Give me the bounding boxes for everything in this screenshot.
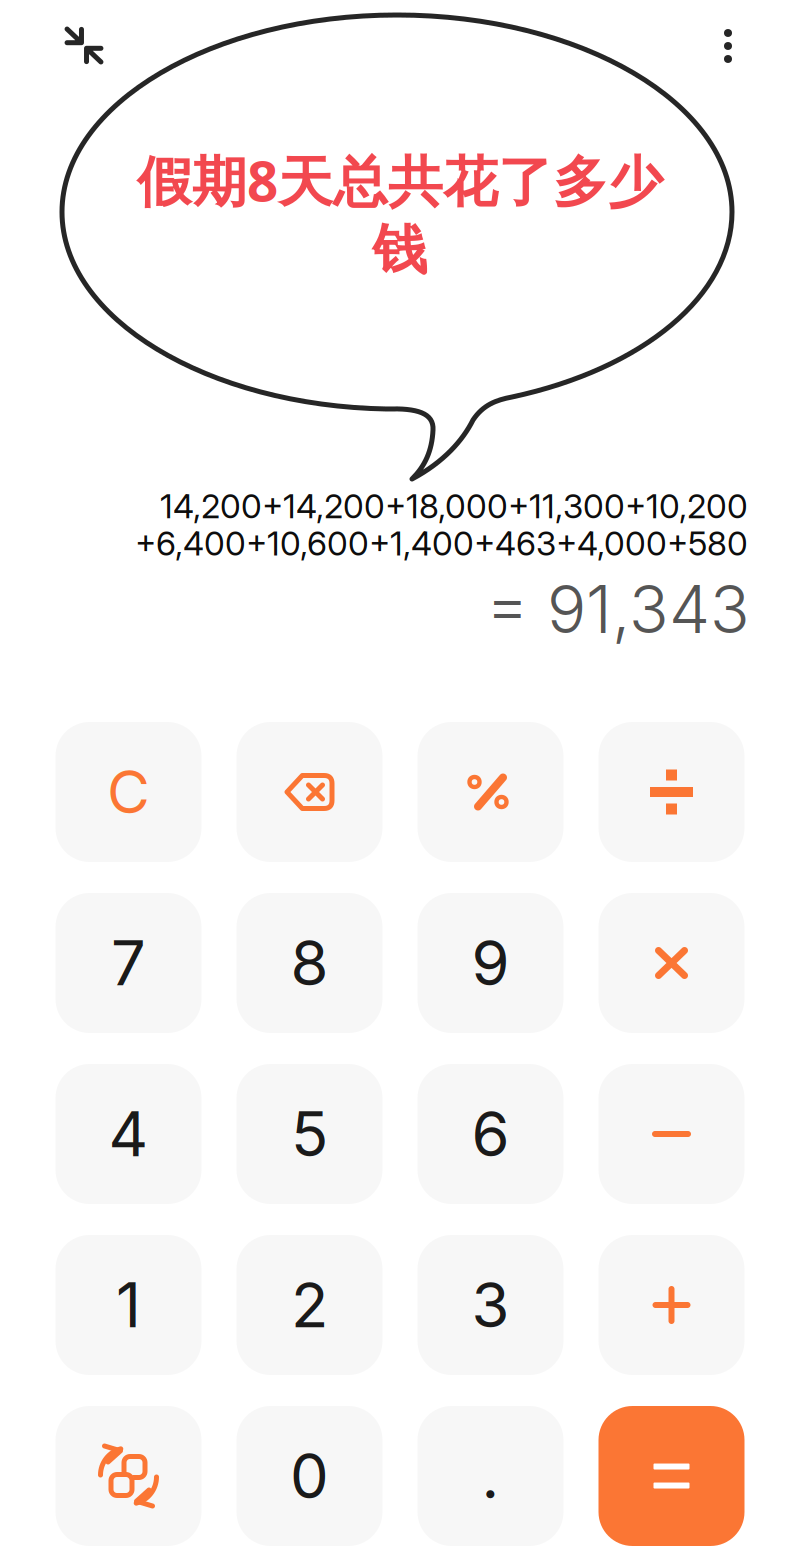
- button[interactable]: Plus: [598, 1235, 744, 1375]
- button[interactable]: 3: [417, 1235, 563, 1375]
- staticText: 2: [291, 1268, 328, 1342]
- button[interactable]: Collapse: [0, 0, 126, 83]
- button[interactable]: 5: [236, 1064, 382, 1204]
- staticText: 5: [291, 1097, 328, 1171]
- button[interactable]: 2: [236, 1235, 382, 1375]
- button[interactable]: 4: [55, 1064, 201, 1204]
- staticText: +6,400+10,600+1,400+463+4,000+580: [135, 523, 748, 564]
- staticText: 4: [108, 1097, 148, 1171]
- staticText: 6: [471, 1097, 509, 1171]
- staticText: 14,200+14,200+18,000+11,300+10,200: [160, 486, 748, 526]
- button[interactable]: Delete: [236, 722, 382, 862]
- button[interactable]: C: [55, 722, 201, 862]
- staticText: 3: [471, 1268, 509, 1342]
- staticText: C: [107, 756, 150, 827]
- button[interactable]: Equals: [598, 1406, 744, 1546]
- staticText: 钱: [372, 217, 427, 284]
- staticText: 9: [471, 926, 509, 1000]
- button[interactable]: 9: [417, 893, 563, 1033]
- button[interactable]: Convert units: [55, 1406, 201, 1546]
- staticText: 假期8天总共花了多少: [137, 144, 663, 217]
- staticText: 8: [290, 926, 328, 1000]
- button[interactable]: 6: [417, 1064, 563, 1204]
- button[interactable]: 1: [55, 1235, 201, 1375]
- staticText: = 91,343: [486, 570, 750, 649]
- button[interactable]: 8: [236, 893, 382, 1033]
- button[interactable]: More options: [682, 0, 800, 83]
- button[interactable]: 7: [55, 893, 201, 1033]
- staticText: 7: [111, 926, 146, 1000]
- button[interactable]: .: [417, 1406, 563, 1546]
- button[interactable]: Percent: [417, 722, 563, 862]
- staticText: 1: [116, 1268, 141, 1342]
- button[interactable]: Divide: [598, 722, 744, 862]
- button[interactable]: Multiply: [598, 893, 744, 1033]
- button[interactable]: 0: [236, 1406, 382, 1546]
- button[interactable]: Minus: [598, 1064, 744, 1204]
- staticText: .: [481, 1439, 499, 1513]
- staticText: 0: [290, 1439, 329, 1513]
